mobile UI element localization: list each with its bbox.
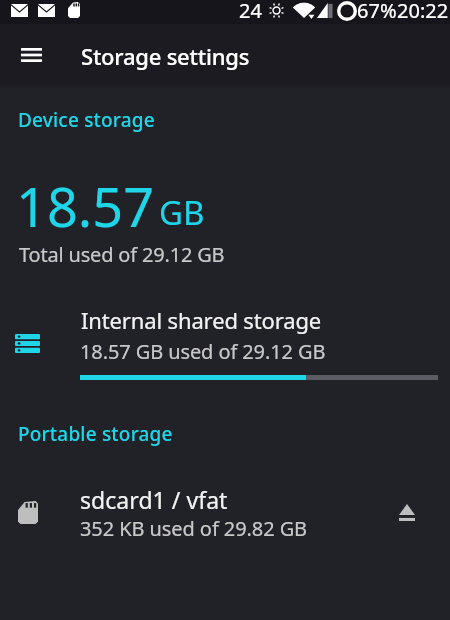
staticText: 67%	[357, 0, 397, 24]
staticText: Device storage	[18, 107, 155, 133]
staticText: Portable storage	[18, 421, 173, 447]
staticText: 20:22	[397, 0, 449, 24]
button[interactable]: sdcard1 / vfat	[0, 474, 450, 546]
staticText: sdcard1 / vfat	[80, 484, 228, 515]
staticText: GB	[159, 190, 205, 235]
button[interactable]: Open navigation drawer	[8, 32, 54, 78]
staticText: Internal shared storage	[81, 305, 322, 335]
staticText: Storage settings	[81, 41, 250, 71]
staticText: 24	[239, 0, 262, 24]
staticText: 18.57 GB used of 29.12 GB	[80, 338, 326, 365]
staticText: 352 KB used of 29.82 GB	[80, 515, 308, 542]
button[interactable]: Eject sdcard1	[383, 488, 431, 536]
staticText: Total used of 29.12 GB	[19, 241, 225, 268]
button[interactable]: Internal shared storage	[0, 296, 450, 390]
staticText: 18.57	[16, 169, 155, 243]
